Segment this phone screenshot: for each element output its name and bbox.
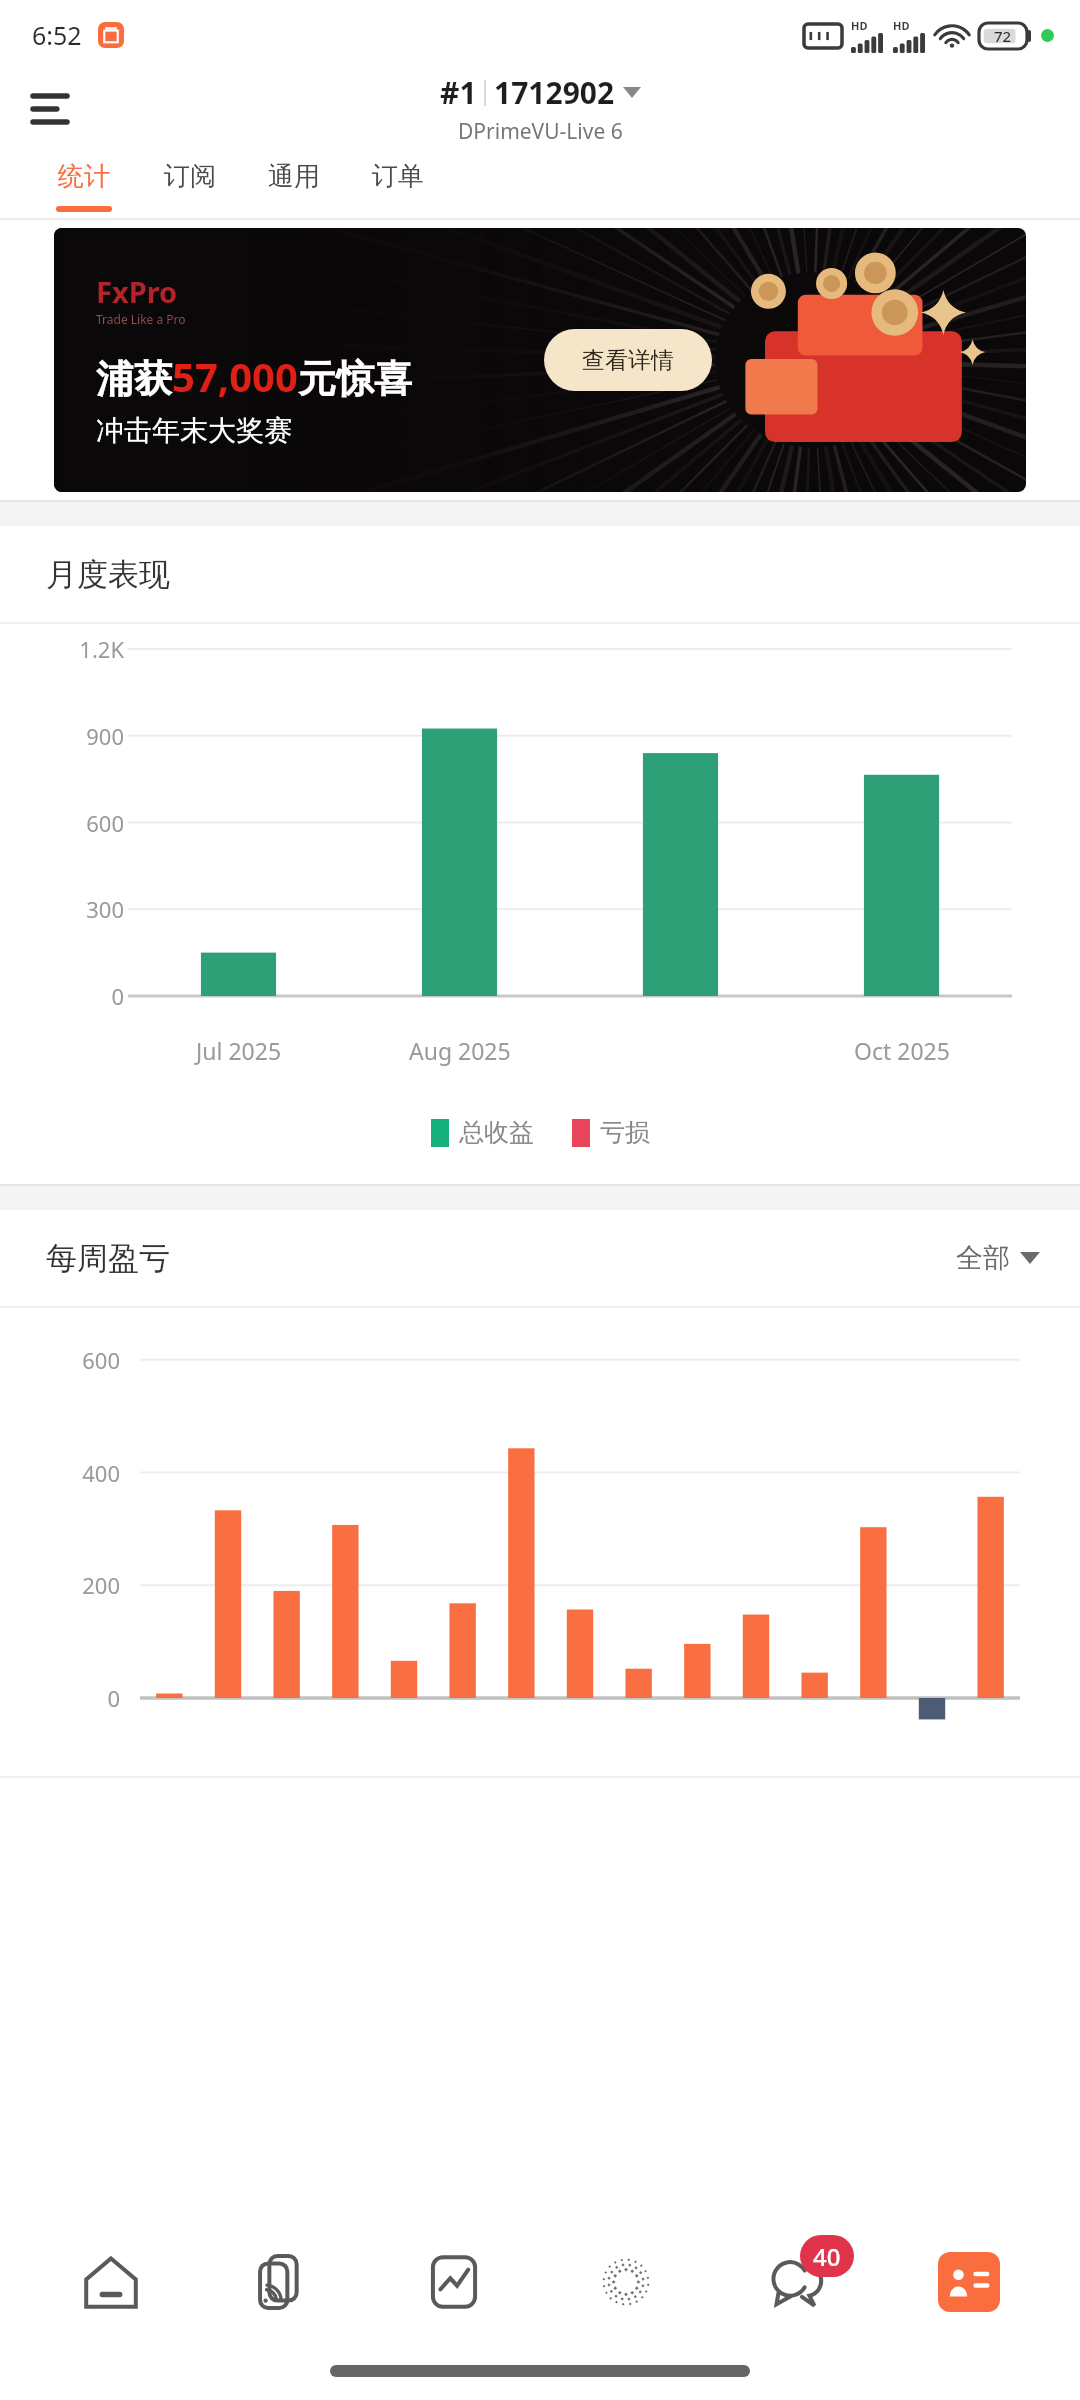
staticText: 0 xyxy=(34,1683,120,1713)
staticText: 400 xyxy=(34,1458,120,1488)
staticText: 亏损 xyxy=(600,1117,650,1148)
staticText: DPrimeVU-Live 6 xyxy=(458,117,623,146)
staticText: 600 xyxy=(34,808,124,838)
button[interactable]: 亏损 xyxy=(572,1117,650,1148)
button[interactable]: Messages xyxy=(737,2222,857,2342)
button[interactable]: 总收益 xyxy=(431,1117,534,1148)
button[interactable]: Profile xyxy=(909,2222,1029,2342)
staticText: HD xyxy=(851,18,868,33)
staticText: 订单 xyxy=(372,160,424,193)
staticText: 40 xyxy=(813,2240,841,2273)
staticText: #1 xyxy=(440,72,477,113)
staticText: Trade Like a Pro xyxy=(96,311,186,327)
button[interactable]: 订单 xyxy=(350,148,446,220)
staticText: 冲击年末大奖赛 xyxy=(96,413,292,448)
button[interactable]: Markets xyxy=(566,2222,686,2342)
staticText: 统计 xyxy=(58,160,110,193)
staticText: 1.2K xyxy=(34,634,124,664)
button[interactable]: 通用 xyxy=(246,148,342,220)
staticText: 每周盈亏 xyxy=(46,1239,170,1278)
staticText: 6:52 xyxy=(32,18,82,52)
staticText: 总收益 xyxy=(459,1117,534,1148)
staticText: 全部 xyxy=(956,1241,1010,1275)
button[interactable]: Charts xyxy=(394,2222,514,2342)
staticText: 0 xyxy=(34,981,124,1011)
staticText: Oct 2025 xyxy=(854,1035,950,1066)
staticText: 900 xyxy=(34,721,124,751)
staticText: 57,000 xyxy=(172,349,298,403)
staticText: 订阅 xyxy=(164,160,216,193)
staticText: 月度表现 xyxy=(46,555,170,594)
button[interactable]: 查看详情 xyxy=(544,329,712,391)
button[interactable]: Menu xyxy=(22,81,78,137)
staticText: HD xyxy=(893,18,910,33)
button[interactable]: Home xyxy=(51,2222,171,2342)
staticText: 查看详情 xyxy=(582,346,674,375)
staticText: 浦获 xyxy=(96,355,172,403)
button[interactable]: 全部 xyxy=(956,1241,1040,1275)
staticText: 元惊喜 xyxy=(298,355,412,403)
button[interactable]: 统计 xyxy=(34,148,134,220)
button[interactable]: 订阅 xyxy=(142,148,238,220)
staticText: 72 xyxy=(994,26,1012,46)
staticText: Jul 2025 xyxy=(196,1035,282,1066)
staticText: Aug 2025 xyxy=(409,1035,511,1066)
staticText: 1712902 xyxy=(494,72,615,113)
staticText: 200 xyxy=(34,1570,120,1600)
button[interactable]: Copy trading xyxy=(223,2222,343,2342)
staticText: FxPro xyxy=(96,272,178,311)
staticText: 600 xyxy=(34,1345,120,1375)
button[interactable]: FxPro xyxy=(54,228,1026,492)
staticText: 300 xyxy=(34,894,124,924)
staticText: 通用 xyxy=(268,160,320,193)
button[interactable]: #1 xyxy=(440,72,641,146)
